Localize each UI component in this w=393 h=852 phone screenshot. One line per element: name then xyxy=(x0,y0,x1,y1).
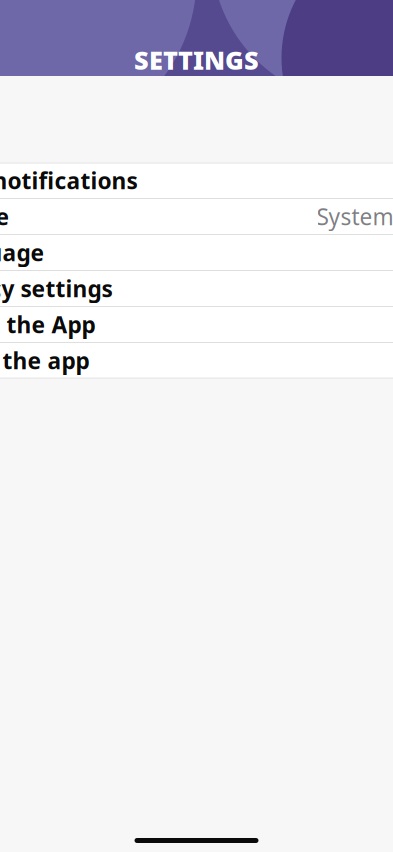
button[interactable]: Language xyxy=(0,235,393,270)
button[interactable]: Theme xyxy=(0,199,393,234)
button[interactable]: Push notifications xyxy=(0,163,393,198)
staticText: Share the app xyxy=(0,345,89,375)
staticText: About the App xyxy=(0,309,95,339)
staticText: System theme xyxy=(316,201,393,231)
staticText: Privacy settings xyxy=(0,273,112,303)
staticText: Push notifications xyxy=(0,165,137,195)
button[interactable]: Share the app xyxy=(0,343,393,378)
button[interactable]: i xyxy=(0,307,393,342)
staticText: SETTINGS xyxy=(134,43,259,77)
staticText: Theme xyxy=(0,201,9,231)
staticText: Language xyxy=(0,237,44,267)
button[interactable]: Privacy settings xyxy=(0,271,393,306)
